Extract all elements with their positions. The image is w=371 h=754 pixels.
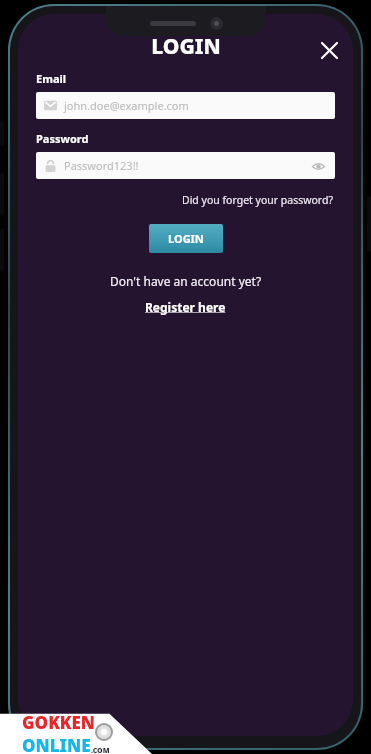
- button[interactable]: Did you forget your password?: [180, 191, 335, 209]
- button[interactable]: Password123!!: [36, 152, 335, 179]
- staticText: Password123!!: [64, 158, 309, 173]
- staticText: Password: [36, 131, 89, 146]
- button[interactable]: LOGIN: [149, 224, 223, 253]
- staticText: Don't have an account yet?: [110, 273, 262, 289]
- staticText: ONLINE: [22, 734, 91, 754]
- button[interactable]: john.doe@example.com: [36, 92, 335, 119]
- staticText: Did you forget your password?: [182, 193, 333, 207]
- staticText: john.doe@example.com: [64, 98, 327, 113]
- staticText: .COM: [91, 746, 110, 754]
- staticText: LOGIN: [151, 32, 221, 61]
- staticText: Email: [36, 71, 67, 86]
- staticText: LOGIN: [168, 231, 204, 246]
- button[interactable]: Show password: [309, 157, 327, 175]
- button[interactable]: Close: [311, 32, 347, 68]
- button[interactable]: Register here: [141, 297, 230, 317]
- staticText: Register here: [145, 299, 226, 315]
- staticText: GOKKEN: [22, 711, 95, 734]
